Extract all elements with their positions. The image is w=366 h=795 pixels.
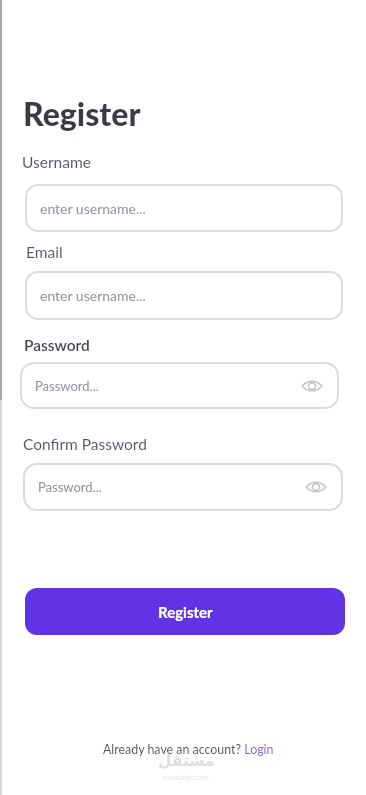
staticText: Register <box>23 94 141 132</box>
button[interactable]: enter username... <box>25 184 343 232</box>
button[interactable]: Register <box>25 588 345 635</box>
staticText: مستقل <box>158 752 215 770</box>
staticText: mostaql.com <box>163 772 209 782</box>
button[interactable]: Password... <box>23 463 343 511</box>
staticText: Confirm Password <box>23 435 147 454</box>
staticText: Register <box>158 603 213 621</box>
staticText: Password <box>24 336 90 355</box>
button[interactable]: Password... <box>20 362 339 409</box>
staticText: Username <box>22 153 91 172</box>
button[interactable]: enter username... <box>25 271 343 320</box>
staticText: enter username... <box>40 200 146 217</box>
button[interactable]: Already have an account? Login <box>103 742 274 757</box>
staticText: Password... <box>38 479 102 495</box>
staticText: Email <box>26 243 63 262</box>
staticText: enter username... <box>40 287 146 304</box>
staticText: Password... <box>35 378 99 394</box>
